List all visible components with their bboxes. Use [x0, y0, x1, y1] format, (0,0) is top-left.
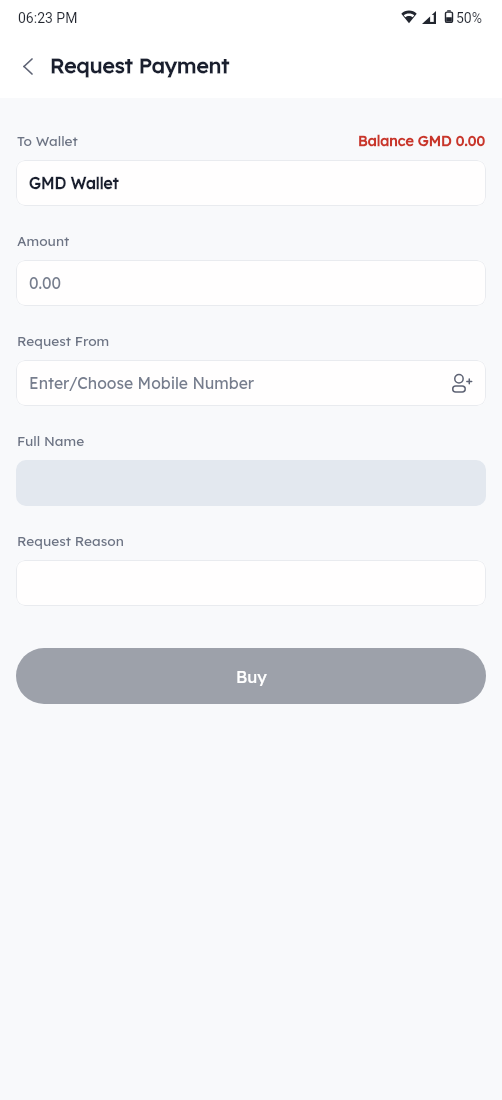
staticText: Request Payment [50, 52, 230, 78]
button[interactable]: Choose contact [449, 371, 473, 395]
staticText: Request From [17, 332, 110, 349]
staticText: 06:23 PM [18, 10, 78, 26]
staticText: Amount [17, 232, 70, 249]
button[interactable]: Enter/Choose Mobile Number [16, 360, 486, 406]
staticText: Balance GMD 0.00 [358, 132, 486, 150]
button[interactable]: 0.00 [16, 260, 486, 306]
staticText: To Wallet [17, 132, 78, 149]
button[interactable]: Buy [16, 648, 486, 704]
staticText: Enter/Choose Mobile Number [29, 373, 255, 393]
staticText: GMD Wallet [29, 173, 119, 193]
button[interactable]: GMD Wallet [16, 160, 486, 206]
staticText: 0.00 [29, 273, 62, 293]
staticText: Full Name [17, 432, 85, 449]
staticText: 50% [456, 10, 482, 26]
staticText: Request Reason [17, 532, 124, 549]
staticText: Buy [236, 666, 267, 687]
button[interactable]: Back [8, 46, 48, 86]
button[interactable] [16, 560, 486, 606]
